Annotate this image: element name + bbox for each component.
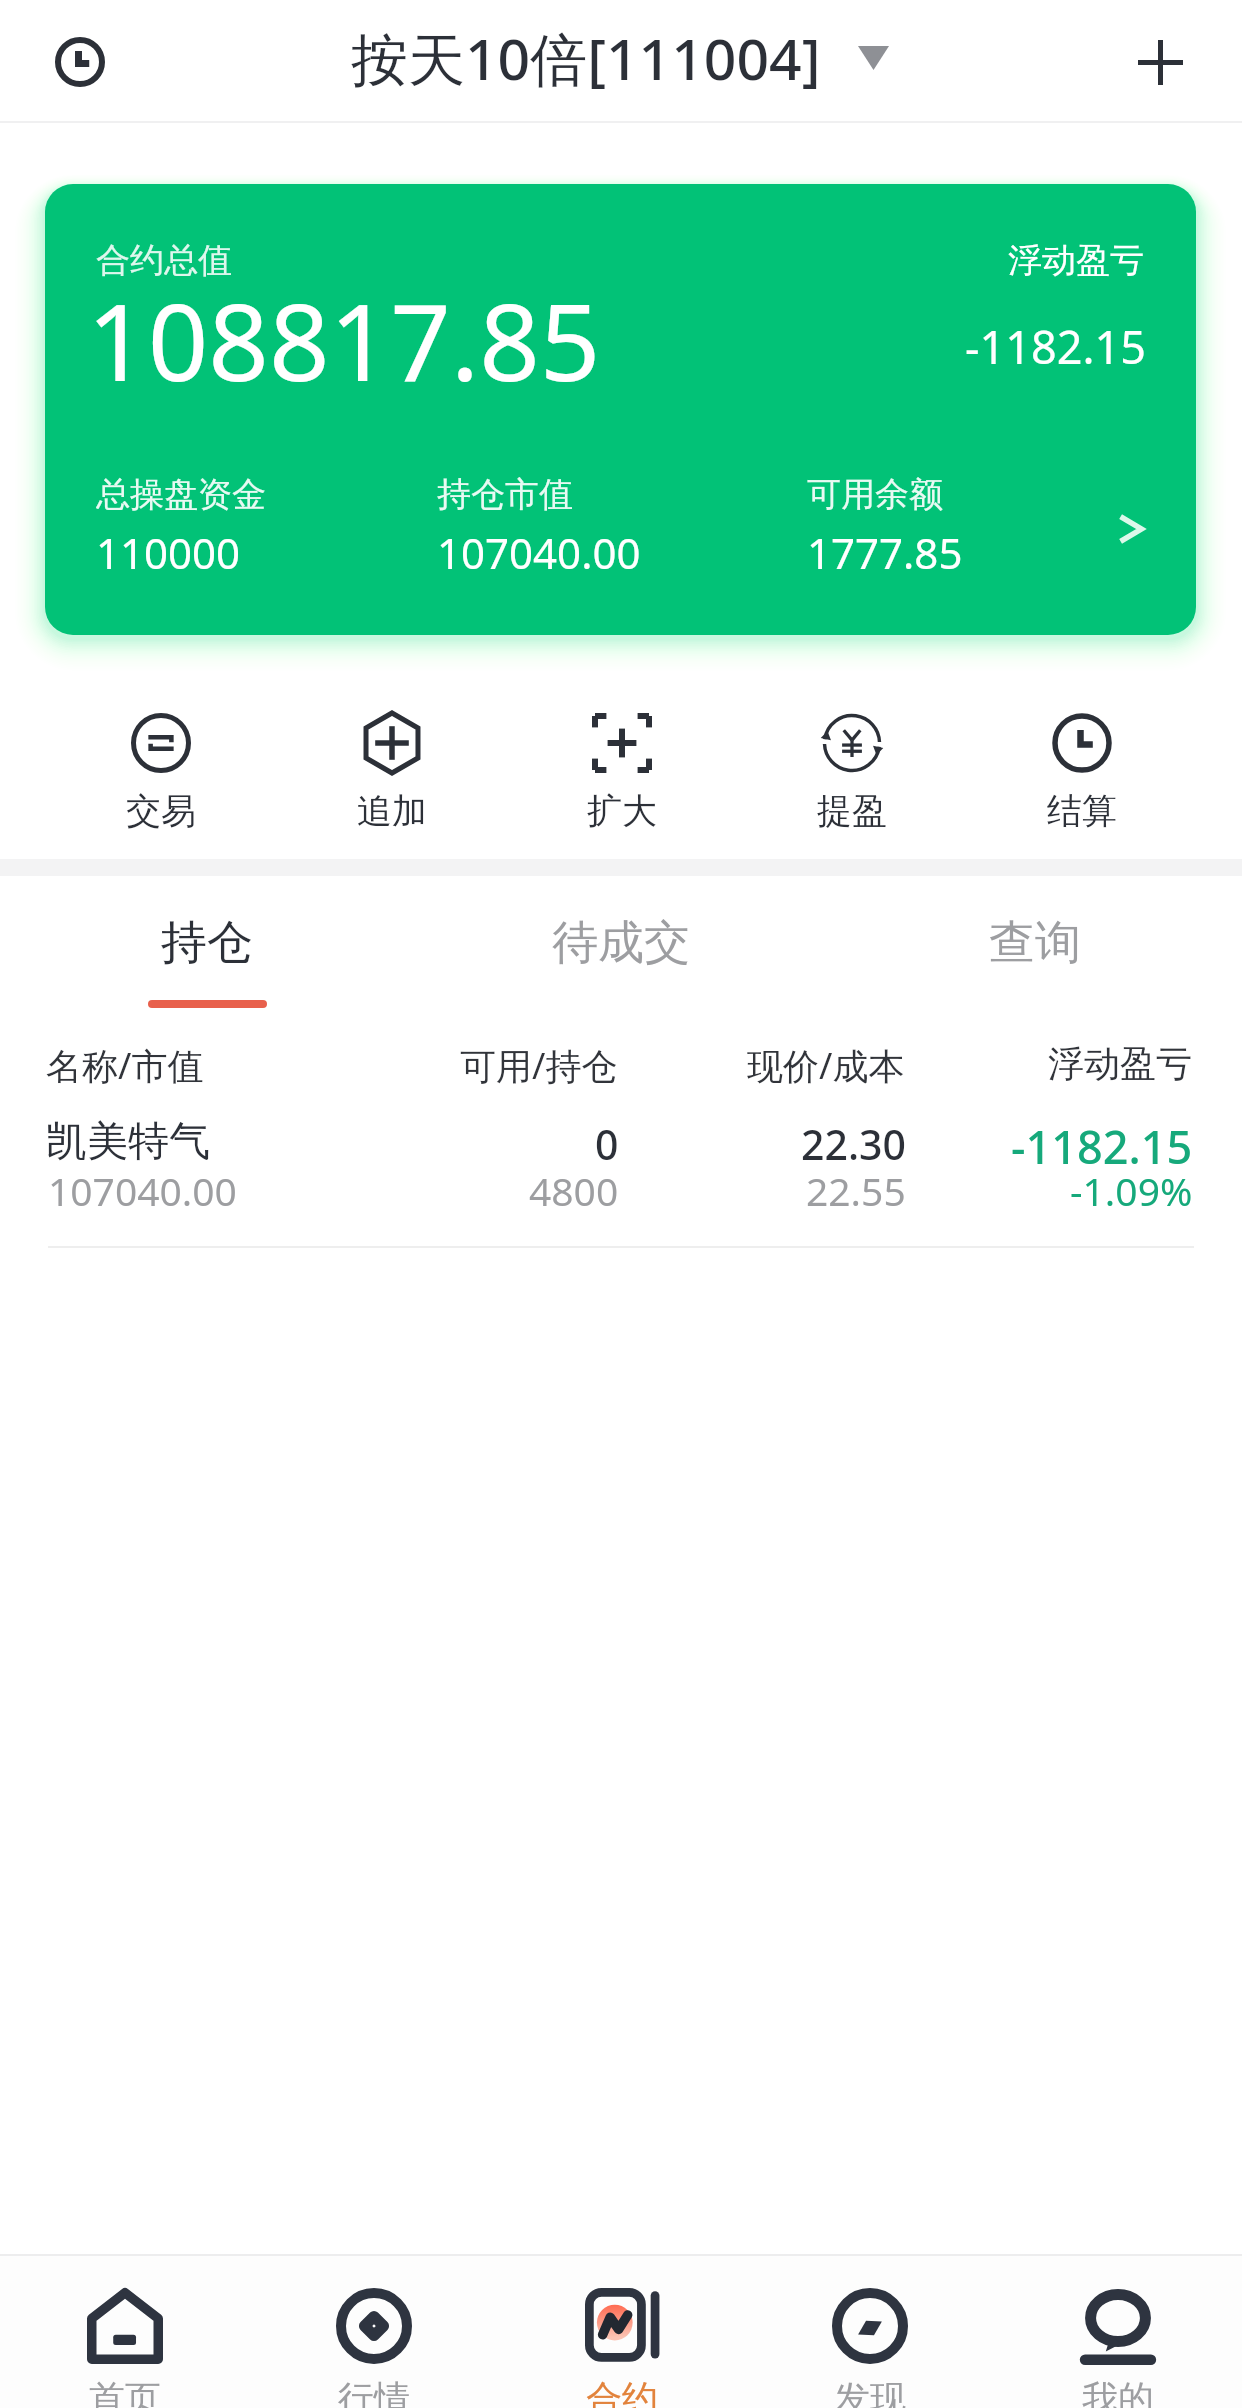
staticText: -1.09% xyxy=(1070,1164,1193,1217)
button[interactable]: 待成交 xyxy=(414,876,828,1000)
staticText: 结算 xyxy=(1047,789,1117,833)
button[interactable]: 合约总值 xyxy=(45,184,1196,635)
button[interactable]: Add xyxy=(1112,14,1208,110)
staticText: 首页 xyxy=(89,2376,161,2408)
button[interactable]: 查询 xyxy=(828,876,1242,1000)
staticText: 110000 xyxy=(96,524,241,581)
staticText: 合约总值 xyxy=(96,239,232,282)
button[interactable]: 按天10倍[111004] xyxy=(343,13,897,103)
button[interactable]: 追加 xyxy=(276,707,507,837)
staticText: 查询 xyxy=(989,914,1081,972)
staticText: 凯美特气 xyxy=(46,1116,210,1168)
button[interactable]: History xyxy=(32,14,128,110)
staticText: 总操盘资金 xyxy=(96,473,266,516)
staticText: 108817.85 xyxy=(87,268,601,412)
staticText: 交易 xyxy=(126,789,196,833)
button[interactable]: 提盈 xyxy=(737,707,967,837)
button[interactable]: 持仓 xyxy=(0,876,414,1008)
staticText: 可用余额 xyxy=(807,473,943,516)
staticText: 我的 xyxy=(1082,2376,1154,2408)
button[interactable]: 合约 xyxy=(498,2256,746,2408)
staticText: 追加 xyxy=(357,789,427,833)
staticText: 22.55 xyxy=(806,1164,906,1217)
staticText: 发现 xyxy=(834,2376,906,2408)
staticText: 22.30 xyxy=(801,1116,906,1172)
staticText: -1182.15 xyxy=(965,316,1146,377)
staticText: 浮动盈亏 xyxy=(1048,1041,1192,1086)
staticText: 现价/成本 xyxy=(747,1041,905,1090)
staticText: 可用/持仓 xyxy=(460,1041,618,1090)
button[interactable]: 首页 xyxy=(0,2256,249,2408)
staticText: -1182.15 xyxy=(1011,1116,1193,1177)
staticText: 名称/市值 xyxy=(46,1041,204,1090)
staticText: 按天10倍[111004] xyxy=(351,19,821,97)
button[interactable]: 结算 xyxy=(967,707,1197,837)
staticText: 扩大 xyxy=(587,789,657,833)
staticText: 107040.00 xyxy=(437,524,641,581)
button[interactable]: 行情 xyxy=(249,2256,498,2408)
button[interactable]: 凯美特气 xyxy=(0,1088,1242,1248)
staticText: 持仓 xyxy=(161,914,253,972)
staticText: 待成交 xyxy=(552,914,690,972)
button[interactable]: 交易 xyxy=(45,707,276,837)
staticText: 行情 xyxy=(338,2376,410,2408)
staticText: 持仓市值 xyxy=(437,473,573,516)
button[interactable]: 发现 xyxy=(746,2256,994,2408)
staticText: 1777.85 xyxy=(807,524,963,581)
staticText: 浮动盈亏 xyxy=(1008,239,1144,282)
button[interactable]: 我的 xyxy=(994,2256,1242,2408)
staticText: 107040.00 xyxy=(48,1164,237,1217)
staticText: 0 xyxy=(595,1116,619,1172)
staticText: 4800 xyxy=(529,1164,619,1217)
button[interactable]: 扩大 xyxy=(507,707,737,837)
staticText: 合约 xyxy=(586,2376,658,2408)
staticText: 提盈 xyxy=(817,789,887,833)
button[interactable]: Account details xyxy=(1107,504,1155,554)
